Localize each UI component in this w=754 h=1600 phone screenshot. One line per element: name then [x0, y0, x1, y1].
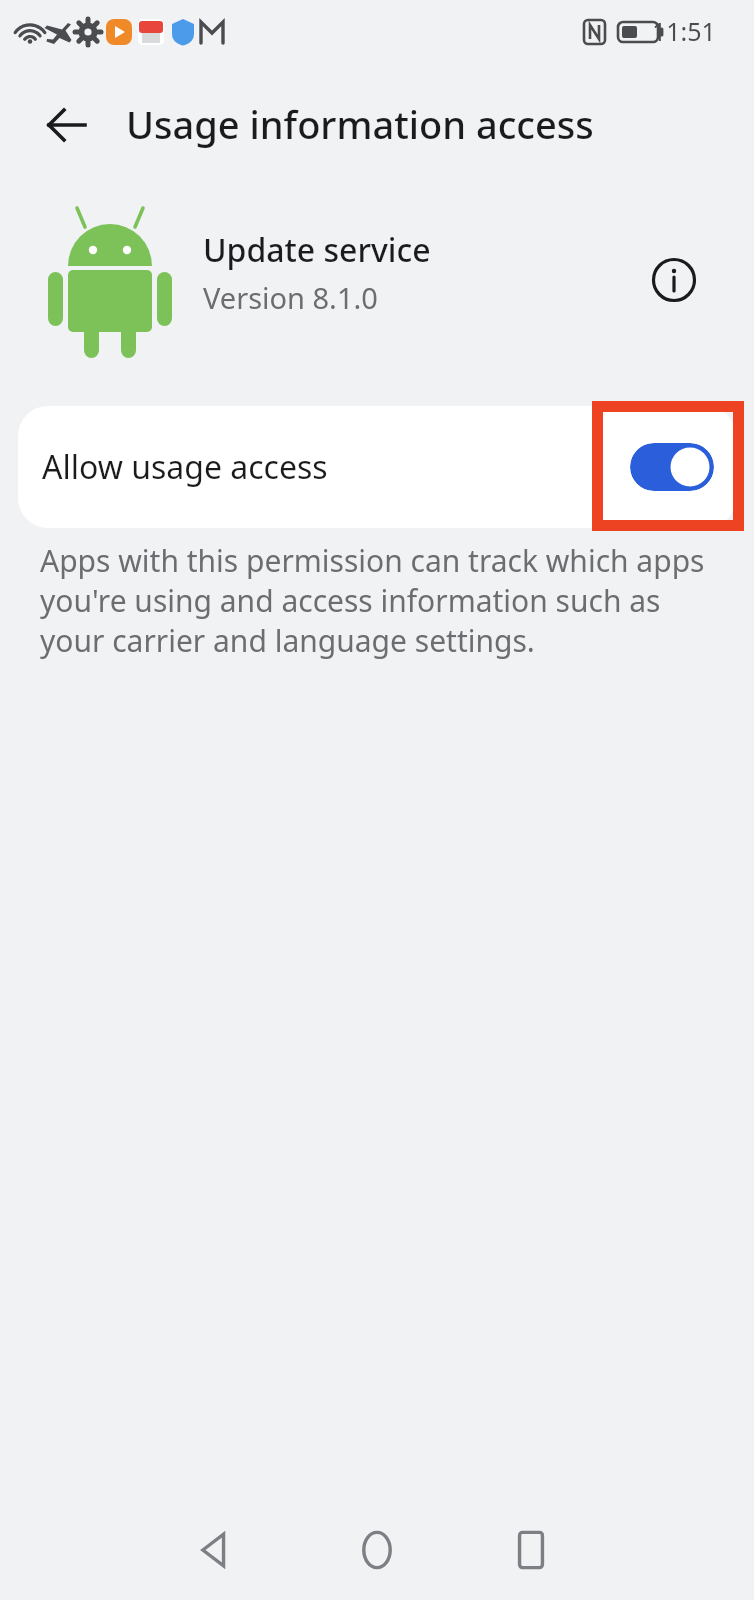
staticText: Usage information access [126, 98, 594, 150]
staticText: 11:51 [652, 14, 716, 48]
button[interactable]: App info [638, 244, 710, 316]
staticText: Allow usage access [42, 445, 328, 489]
button[interactable]: Back [30, 88, 104, 162]
button[interactable]: Allow usage access toggle, on [630, 443, 714, 491]
button[interactable]: Recent apps [478, 1500, 584, 1600]
button[interactable]: Back [160, 1500, 266, 1600]
button[interactable]: Home [324, 1500, 430, 1600]
staticText: Version 8.1.0 [203, 278, 378, 317]
button[interactable]: Allow usage access [18, 406, 736, 528]
staticText: Apps with this permission can track whic… [40, 540, 708, 661]
staticText: Update service [203, 228, 431, 272]
